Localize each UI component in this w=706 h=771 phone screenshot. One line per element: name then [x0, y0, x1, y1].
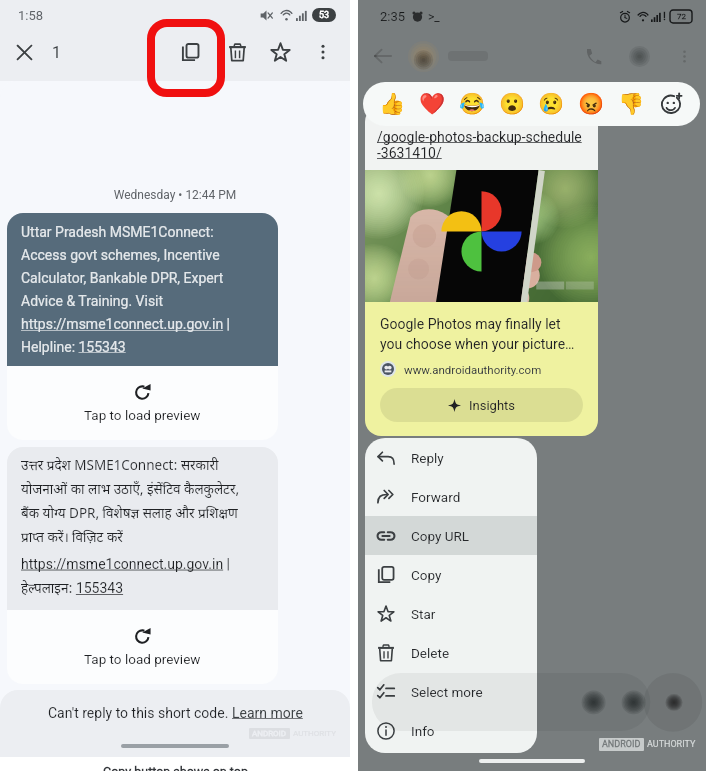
button[interactable]: Copy URL: [365, 516, 537, 555]
staticText: AUTHORITY: [293, 729, 336, 738]
staticText: उत्तर प्रदेश MSME1Connect: सरकारी योजनाओ…: [21, 458, 240, 599]
button[interactable]: 😡: [576, 89, 606, 119]
button[interactable]: Copy: [365, 555, 537, 594]
button[interactable]: Info: [365, 711, 537, 750]
staticText: ❤️: [419, 92, 446, 117]
button[interactable]: Delete: [219, 34, 255, 70]
staticText: Insights: [469, 398, 516, 413]
staticText: 72: [677, 12, 686, 21]
staticText: !: [663, 10, 666, 23]
staticText: Select more: [411, 684, 483, 700]
button[interactable]: Copy: [170, 32, 210, 72]
staticText: ANDROID: [252, 729, 287, 738]
staticText: Forward: [411, 489, 461, 505]
staticText: 😂: [459, 92, 486, 117]
button[interactable]: Can't reply to this short code.: [48, 705, 303, 721]
button[interactable]: Insights: [380, 388, 583, 422]
staticText: 1:58: [18, 8, 44, 23]
button[interactable]: Star: [365, 594, 537, 633]
staticText: Wednesday • 12:44 PM: [0, 188, 350, 202]
button[interactable]: Tap to load preview: [7, 610, 278, 684]
button[interactable]: 😢: [536, 89, 566, 119]
staticText: Copy button shows on top: [103, 764, 248, 771]
staticText: 😮: [499, 92, 526, 117]
staticText: Delete: [411, 645, 450, 661]
button[interactable]: 👍: [377, 89, 407, 119]
button[interactable]: Tap to load preview: [7, 366, 278, 440]
button[interactable]: 😮: [497, 89, 527, 119]
staticText: -3631410/: [377, 145, 442, 161]
staticText: 😢: [538, 92, 565, 117]
staticText: Uttar Pradesh MSME1Connect: Access govt …: [21, 224, 231, 355]
button[interactable]: Reply: [365, 438, 537, 477]
staticText: Copy URL: [411, 528, 470, 544]
staticText: Tap to load preview: [84, 407, 201, 423]
button[interactable]: Select more: [365, 672, 537, 711]
staticText: 👎: [618, 92, 645, 117]
button[interactable]: 👎: [616, 89, 646, 119]
staticText: >_: [428, 10, 440, 24]
staticText: www.androidauthority.com: [404, 363, 542, 376]
staticText: Learn more: [232, 705, 303, 721]
staticText: AUTHORITY: [647, 739, 696, 750]
staticText: Reply: [411, 450, 444, 466]
staticText: 1: [52, 43, 61, 62]
staticText: Tap to load preview: [84, 651, 201, 667]
button[interactable]: More options: [305, 34, 341, 70]
button[interactable]: More reactions: [656, 89, 686, 119]
staticText: Can't reply to this short code.: [48, 705, 232, 721]
staticText: 2:35: [380, 9, 406, 24]
staticText: 53: [319, 10, 330, 21]
button[interactable]: Delete: [365, 633, 537, 672]
staticText: /google-photos-backup-schedule: [377, 129, 582, 145]
staticText: Google Photos may finally let you choose…: [380, 316, 575, 352]
button[interactable]: Forward: [365, 477, 537, 516]
staticText: Copy: [411, 567, 442, 583]
staticText: Star: [411, 606, 436, 622]
button[interactable]: Close: [9, 37, 39, 67]
button[interactable]: 😂: [457, 89, 487, 119]
staticText: Info: [411, 723, 435, 739]
button[interactable]: ❤️: [417, 89, 447, 119]
staticText: 😡: [578, 92, 605, 117]
staticText: 👍: [379, 92, 406, 117]
staticText: ANDROID: [602, 739, 641, 750]
button[interactable]: Star: [262, 34, 298, 70]
